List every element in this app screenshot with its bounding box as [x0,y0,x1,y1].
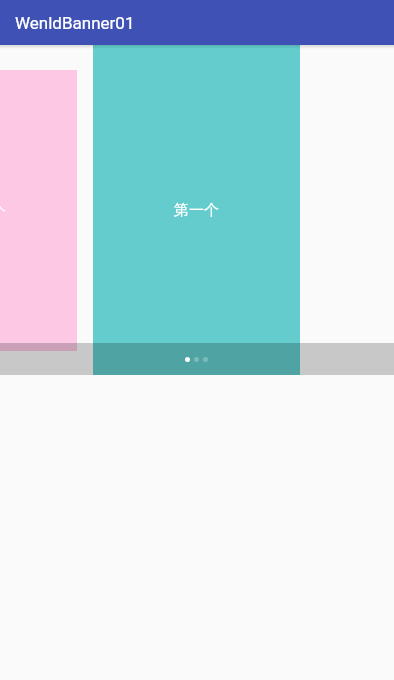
button[interactable]: 第一个 [93,45,300,375]
button[interactable]: WenldBanner01 [0,0,394,45]
staticText: WenldBanner01 [15,13,135,33]
button[interactable]: Go to page 1 [185,357,190,362]
button[interactable]: 第三个 [0,70,77,351]
button[interactable]: Go to page 3 [203,357,208,362]
staticText: 第一个 [174,201,219,220]
button[interactable]: Go to page 2 [194,357,199,362]
staticText: 第三个 [0,203,6,219]
